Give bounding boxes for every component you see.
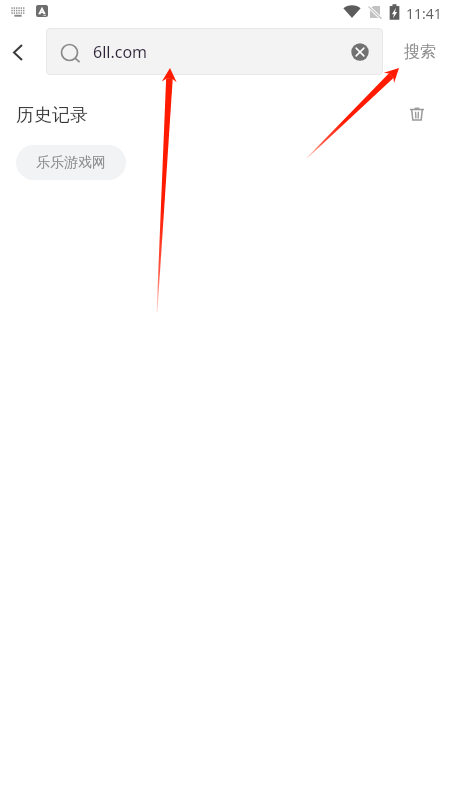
button[interactable]: 搜索: [383, 28, 450, 75]
staticText: 搜索: [404, 42, 436, 62]
staticText: 11:41: [406, 4, 442, 23]
staticText: 历史记录: [16, 104, 88, 127]
staticText: 6ll.com: [93, 41, 148, 63]
button[interactable]: Clear: [347, 39, 373, 65]
button[interactable]: Clear history: [399, 96, 435, 132]
staticText: 乐乐游戏网: [36, 154, 106, 172]
button[interactable]: Back: [0, 28, 46, 75]
button[interactable]: 乐乐游戏网: [16, 145, 126, 180]
button[interactable]: 6ll.com: [46, 28, 383, 75]
